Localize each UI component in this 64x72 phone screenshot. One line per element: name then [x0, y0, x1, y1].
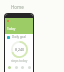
- staticText: steps today: [11, 59, 28, 63]
- staticText: Home: [11, 4, 24, 10]
- staticText: 8,240: [15, 47, 24, 52]
- staticText: Today: [7, 27, 16, 31]
- staticText: Daily goal: [12, 35, 26, 39]
- button[interactable]: Profile: [26, 64, 32, 70]
- button[interactable]: Stats: [13, 64, 19, 70]
- button[interactable]: Home: [6, 64, 12, 70]
- button[interactable]: Plan: [19, 64, 25, 70]
